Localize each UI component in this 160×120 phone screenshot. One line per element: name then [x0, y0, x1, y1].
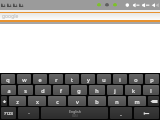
button[interactable]: i: [113, 74, 127, 84]
button[interactable]: x: [28, 96, 46, 106]
staticText: f: [60, 87, 62, 94]
button[interactable]: g: [71, 85, 87, 95]
button[interactable]: Backspace: [148, 96, 159, 106]
staticText: v: [76, 98, 79, 105]
button[interactable]: e: [33, 74, 47, 84]
button[interactable]: v: [68, 96, 86, 106]
staticText: l: [150, 87, 152, 94]
staticText: g: [77, 87, 81, 94]
staticText: x: [36, 98, 39, 105]
staticText: n: [115, 98, 119, 105]
button[interactable]: Shift: [1, 96, 7, 106]
button[interactable]: s: [18, 85, 33, 95]
staticText: j: [114, 87, 116, 94]
staticText: .: [120, 110, 122, 117]
staticText: k: [132, 87, 135, 94]
button[interactable]: Space: [41, 107, 108, 119]
button[interactable]: ?123: [1, 107, 16, 119]
button[interactable]: Comma: [18, 107, 39, 119]
staticText: t: [71, 76, 73, 83]
button[interactable]: m: [128, 96, 146, 106]
staticText: h: [95, 87, 99, 94]
staticText: p: [150, 76, 154, 83]
staticText: a: [7, 87, 11, 94]
button[interactable]: z: [9, 96, 26, 106]
staticText: q: [6, 76, 10, 83]
staticText: d: [41, 87, 45, 94]
staticText: s: [24, 87, 27, 94]
button[interactable]: Notification: [18, 0, 24, 10]
button[interactable]: .: [110, 107, 132, 119]
button[interactable]: w: [17, 74, 31, 84]
staticText: b: [95, 98, 99, 105]
button[interactable]: b: [88, 96, 106, 106]
staticText: English: [69, 109, 81, 114]
button[interactable]: google: [0, 13, 160, 20]
staticText: i: [119, 76, 121, 83]
button[interactable]: c: [48, 96, 66, 106]
staticText: y: [87, 76, 90, 83]
staticText: u: [102, 76, 106, 83]
button[interactable]: h: [89, 85, 105, 95]
staticText: w: [22, 76, 27, 83]
staticText: z: [16, 98, 19, 105]
button[interactable]: k: [125, 85, 141, 95]
button[interactable]: Notification: [6, 0, 12, 10]
button[interactable]: y: [81, 74, 95, 84]
button[interactable]: u: [97, 74, 111, 84]
button[interactable]: n: [108, 96, 126, 106]
button[interactable]: l: [143, 85, 159, 95]
staticText: (US): [72, 114, 78, 118]
button[interactable]: q: [1, 74, 15, 84]
staticText: google: [2, 13, 19, 20]
staticText: ?123: [4, 111, 13, 116]
button[interactable]: a: [1, 85, 16, 95]
staticText: c: [56, 98, 59, 105]
staticText: r: [55, 76, 58, 83]
button[interactable]: Notification: [12, 0, 18, 10]
button[interactable]: t: [65, 74, 79, 84]
staticText: o: [134, 76, 138, 83]
button[interactable]: Enter: [134, 107, 159, 119]
button[interactable]: p: [145, 74, 159, 84]
staticText: m: [134, 98, 140, 105]
button[interactable]: j: [107, 85, 123, 95]
button[interactable]: o: [129, 74, 143, 84]
button[interactable]: Notification: [0, 0, 6, 10]
button[interactable]: d: [35, 85, 51, 95]
staticText: e: [38, 76, 42, 83]
button[interactable]: f: [53, 85, 69, 95]
button[interactable]: r: [49, 74, 63, 84]
